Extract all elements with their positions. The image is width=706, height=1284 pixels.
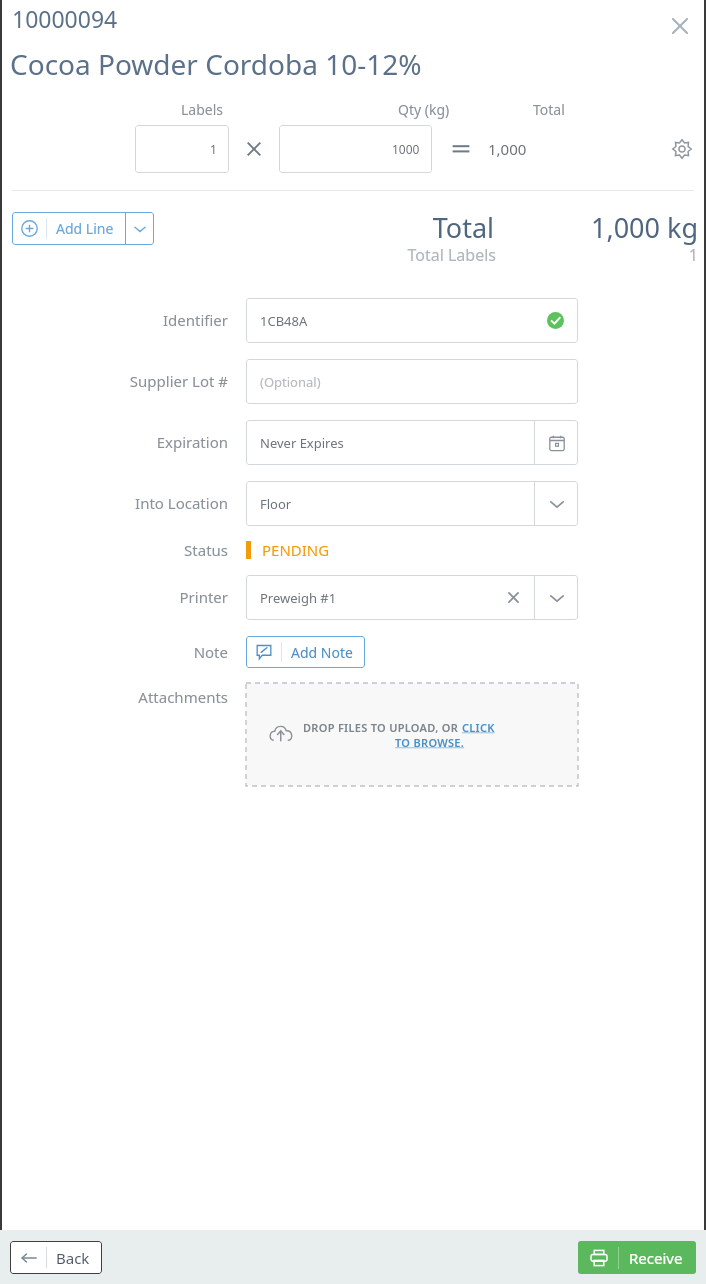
staticText: Add Line [56,219,114,238]
button[interactable]: 1 [135,125,229,173]
button[interactable]: 1CB48A [246,298,578,343]
staticText: 1,000 kg [0,209,698,246]
staticText: 1 [210,141,217,157]
button[interactable]: Never Expires [246,420,578,465]
staticText: Identifier [162,310,228,330]
button[interactable]: Receive [578,1241,696,1274]
staticText: Total Labels [0,244,496,266]
staticText: PENDING [262,540,330,560]
button[interactable]: Back [10,1241,102,1274]
staticText: (Optional) [260,373,564,391]
staticText: 1CB48A [260,312,547,330]
staticText: 1 [0,244,698,266]
button[interactable]: Close [660,6,700,46]
staticText: Qty (kg) [398,100,450,119]
button[interactable]: (Optional) [246,359,578,404]
staticText: Expiration [156,432,228,452]
staticText: Total [533,100,565,119]
button[interactable]: Settings [662,129,702,169]
staticText: Never Expires [260,434,520,452]
button[interactable]: Add Note [246,636,365,668]
staticText: Note [193,642,228,662]
other: Pick date [548,434,566,452]
staticText: Receive [629,1248,683,1268]
staticText: Total [0,209,494,246]
button[interactable]: 1000 [279,125,432,173]
staticText: 10000094 [12,3,118,34]
staticText: Back [56,1248,90,1268]
staticText: Supplier Lot # [129,371,228,391]
staticText: Printer [179,587,228,607]
button[interactable]: DROP FILES TO UPLOAD, OR [246,683,578,786]
staticText: Attachments [138,687,228,707]
staticText: Cocoa Powder Cordoba 10-12% [10,45,422,83]
staticText: 1,000 [488,139,527,159]
button[interactable]: Add Line [12,212,154,245]
staticText: Status [184,540,228,560]
other: Open printer list [546,587,568,609]
other: Open location list [546,493,568,515]
staticText: Add Note [291,643,353,662]
staticText: DROP FILES TO UPLOAD, OR [303,720,462,735]
staticText: CLICK [462,720,495,735]
staticText: 1000 [392,141,420,157]
button[interactable]: Preweigh #1 [246,575,578,620]
staticText: Floor [260,495,520,513]
button[interactable]: Floor [246,481,578,526]
staticText: Labels [181,100,224,119]
staticText: Preweigh #1 [260,589,507,607]
staticText: TO BROWSE. [395,735,465,750]
staticText: Into Location [135,493,228,513]
